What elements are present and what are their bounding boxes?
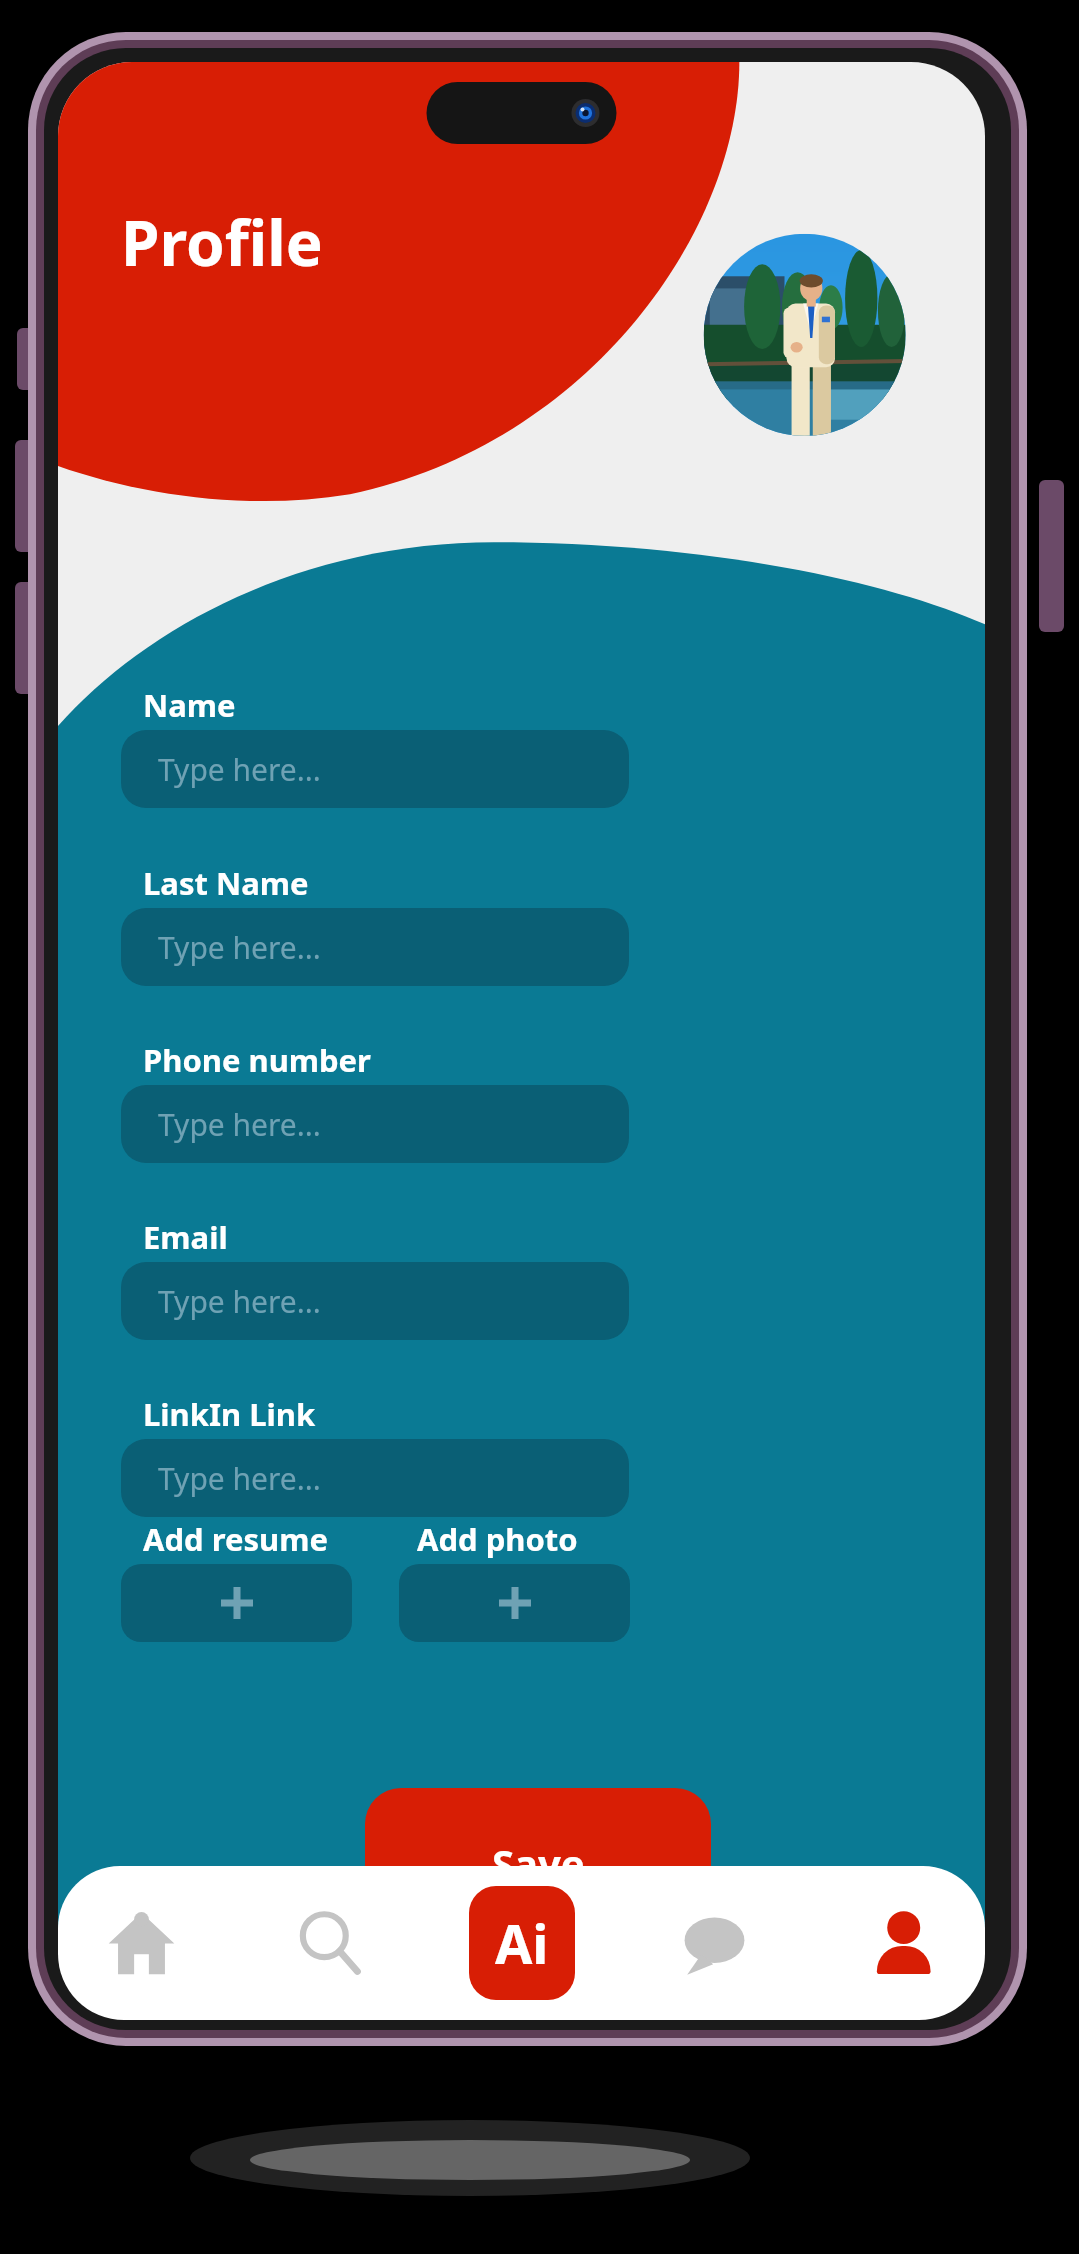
button[interactable]: Type here... xyxy=(121,1085,629,1163)
staticText: Add photo xyxy=(417,1518,578,1560)
staticText: Last Name xyxy=(143,862,309,904)
button[interactable]: Add photo xyxy=(399,1564,630,1642)
button[interactable]: Type here... xyxy=(121,1262,629,1340)
staticText: Profile xyxy=(121,200,323,284)
button[interactable]: Add resume xyxy=(121,1564,352,1642)
staticText: LinkIn Link xyxy=(143,1393,316,1435)
button[interactable]: Type here... xyxy=(121,730,629,808)
button[interactable]: Home xyxy=(92,1894,190,1992)
button[interactable]: Type here... xyxy=(121,908,629,986)
staticText: Type here... xyxy=(158,1458,321,1499)
button[interactable]: Search xyxy=(280,1894,378,1992)
button[interactable]: Type here... xyxy=(121,1439,629,1517)
button[interactable]: Profile xyxy=(853,1894,951,1992)
staticText: Type here... xyxy=(158,927,321,968)
staticText: Email xyxy=(143,1216,228,1258)
button[interactable]: Ai xyxy=(469,1886,575,2000)
staticText: Phone number xyxy=(143,1039,371,1081)
staticText: Type here... xyxy=(158,749,321,790)
staticText: Save xyxy=(492,1836,585,1890)
button[interactable]: Profile photo xyxy=(705,234,907,436)
staticText: Ai xyxy=(495,1906,549,1980)
staticText: Name xyxy=(143,684,236,726)
button[interactable]: Messages xyxy=(665,1894,763,1992)
button[interactable]: Save xyxy=(365,1788,711,1940)
staticText: Type here... xyxy=(158,1281,321,1322)
staticText: Add resume xyxy=(143,1518,328,1560)
staticText: Type here... xyxy=(158,1104,321,1145)
